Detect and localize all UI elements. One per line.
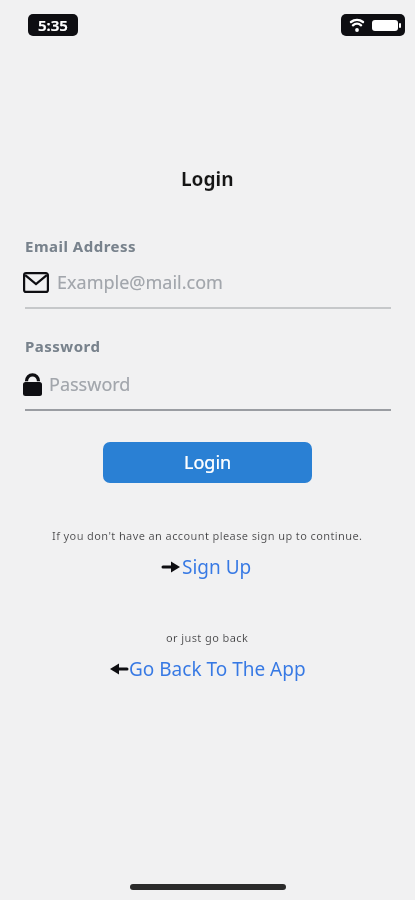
staticText: Sign Up (182, 554, 252, 580)
staticText: Example@mail.com (57, 270, 223, 295)
staticText: Email Address (25, 236, 137, 256)
staticText: 5:35 (38, 15, 68, 35)
staticText: Login (181, 166, 234, 192)
button[interactable]: Sign Up (163, 554, 252, 580)
staticText: If you don't have an account please sign… (52, 528, 363, 543)
staticText: Password (25, 336, 101, 356)
staticText: Login (184, 450, 232, 475)
button[interactable]: Password (23, 369, 131, 399)
staticText: Password (49, 372, 131, 397)
staticText: or just go back (166, 630, 249, 645)
button[interactable]: Example@mail.com (23, 266, 223, 298)
button[interactable]: Login (103, 442, 312, 483)
button[interactable]: Go Back To The App (110, 656, 306, 682)
staticText: Go Back To The App (129, 656, 306, 682)
